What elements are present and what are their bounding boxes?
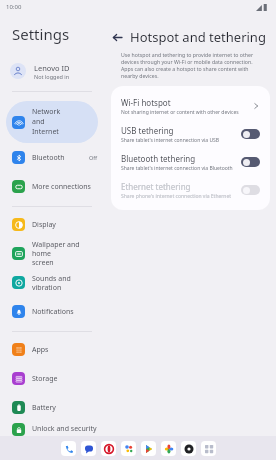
staticText: Battery xyxy=(32,403,98,413)
button[interactable]: Battery xyxy=(0,393,104,422)
staticText: Internet xyxy=(32,127,59,137)
staticText: and xyxy=(32,117,45,127)
button[interactable]: Ethernet tethering xyxy=(121,176,260,204)
button[interactable]: Notifications xyxy=(0,297,104,326)
button[interactable]: All apps xyxy=(201,441,216,456)
staticText: Display xyxy=(32,220,98,230)
button[interactable]: Phone xyxy=(61,441,76,456)
button[interactable]: Bluetooth xyxy=(0,143,104,172)
button[interactable]: Google Photos xyxy=(161,441,176,456)
button[interactable]: Lenovo ID xyxy=(0,56,104,86)
staticText: Use hotspot and tethering to provide int… xyxy=(121,51,262,79)
button[interactable]: Display xyxy=(0,210,104,239)
staticText: Storage xyxy=(32,374,98,384)
button[interactable]: More connections xyxy=(0,172,104,201)
staticText: Apps xyxy=(32,345,98,355)
staticText: Notifications xyxy=(32,307,98,317)
staticText: Lenovo ID xyxy=(34,63,70,73)
button[interactable]: Bluetooth tethering xyxy=(121,148,260,176)
button[interactable]: Opera xyxy=(101,441,116,456)
button[interactable]: Back xyxy=(108,28,126,46)
staticText: Ethernet tethering xyxy=(121,181,191,192)
staticText: Unlock and security xyxy=(32,424,98,434)
staticText: Wallpaper and home screen xyxy=(32,240,98,267)
staticText: 10:00 xyxy=(6,3,22,11)
button[interactable]: Toggle xyxy=(241,129,260,139)
button[interactable]: Play Store xyxy=(141,441,156,456)
button[interactable]: Unlock and security xyxy=(0,422,104,436)
staticText: Share phone's internet connection via Et… xyxy=(121,193,232,200)
button[interactable]: Toggle xyxy=(241,185,260,195)
staticText: Hotspot and tethering xyxy=(130,28,266,46)
staticText: Wi-Fi hotspot xyxy=(121,97,171,108)
button[interactable]: Toggle xyxy=(241,157,260,167)
button[interactable]: Network xyxy=(6,101,98,143)
staticText: USB tethering xyxy=(121,125,174,136)
staticText: Sounds and vibration xyxy=(32,274,98,292)
button[interactable]: Wi-Fi hotspot xyxy=(121,92,260,120)
button[interactable]: Photos xyxy=(121,441,136,456)
staticText: Not sharing internet or content with oth… xyxy=(121,109,239,116)
button[interactable]: Storage xyxy=(0,364,104,393)
button[interactable]: Messages xyxy=(81,441,96,456)
staticText: Bluetooth xyxy=(32,153,89,163)
button[interactable]: USB tethering xyxy=(121,120,260,148)
button[interactable]: Apps xyxy=(0,335,104,364)
button[interactable]: Sounds and vibration xyxy=(0,268,104,297)
staticText: Off xyxy=(89,154,98,161)
staticText: More connections xyxy=(32,182,98,192)
staticText: Share tablet's internet connection via B… xyxy=(121,165,233,172)
staticText: Share tablet's internet connection via U… xyxy=(121,137,220,144)
staticText: Not logged in xyxy=(34,73,70,80)
button[interactable]: Wallpaper and home screen xyxy=(0,239,104,268)
staticText: Settings xyxy=(12,24,70,44)
staticText: Bluetooth tethering xyxy=(121,153,196,164)
staticText: Network xyxy=(32,107,61,117)
button[interactable]: Settings xyxy=(181,441,196,456)
